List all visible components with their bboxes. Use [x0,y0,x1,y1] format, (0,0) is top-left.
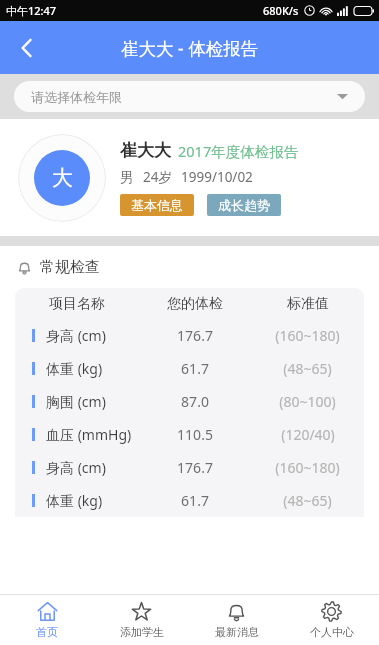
button[interactable]: 请选择体检年限 [14,81,365,112]
staticText: 男 [120,169,134,186]
staticText: 常规检查 [40,258,100,277]
staticText: 身高 (cm) [46,458,106,477]
staticText: 个人中心 [310,625,354,639]
staticText: 1999/10/02 [181,168,253,186]
staticText: 176.7 [177,458,213,477]
staticText: 崔大大 [120,140,171,161]
staticText: 110.5 [177,425,213,444]
button[interactable]: 首页 [0,595,94,645]
staticText: (80~100) [279,392,336,411]
staticText: 61.7 [181,359,209,378]
button[interactable]: 血压 (mmHg) [15,418,364,451]
button[interactable]: 基本信息 [120,194,194,216]
button[interactable]: 个人中心 [284,595,379,645]
staticText: (160~180) [275,458,340,477]
button[interactable]: 体重 (kg) [15,352,364,385]
staticText: 680K/s [263,3,299,18]
button[interactable]: 添加学生 [94,595,189,645]
staticText: 最新消息 [215,625,259,639]
staticText: (160~180) [275,326,340,345]
staticText: 176.7 [177,326,213,345]
staticText: 崔大大 - 体检报告 [121,36,259,60]
staticText: 成长趋势 [218,197,270,213]
staticText: 项目名称 [49,295,105,313]
button[interactable]: 胸围 (cm) [15,385,364,418]
staticText: 首页 [36,625,58,639]
staticText: 中午12:47 [6,3,57,18]
staticText: (48~65) [283,359,332,378]
staticText: 61.7 [181,491,209,510]
staticText: 身高 (cm) [46,326,106,345]
staticText: 24岁 [143,168,172,186]
staticText: 添加学生 [120,625,164,639]
button[interactable]: 最新消息 [189,595,284,645]
button[interactable]: 身高 (cm) [15,451,364,484]
button[interactable]: 体重 (kg) [15,484,364,517]
staticText: 您的体检 [167,295,223,313]
staticText: 大 [52,165,73,191]
staticText: 标准值 [287,295,329,313]
staticText: 基本信息 [131,197,183,213]
button[interactable]: 成长趋势 [207,194,281,216]
staticText: (120/40) [281,425,335,444]
button[interactable]: Back [4,25,50,71]
staticText: 请选择体检年限 [31,89,122,105]
staticText: 胸围 (cm) [46,392,106,411]
staticText: (48~65) [283,491,332,510]
staticText: 血压 (mmHg) [46,425,132,444]
staticText: 体重 (kg) [46,359,103,378]
staticText: 体重 (kg) [46,491,103,510]
button[interactable]: 身高 (cm) [15,319,364,352]
staticText: 2017年度体检报告 [178,141,299,161]
staticText: 87.0 [181,392,209,411]
